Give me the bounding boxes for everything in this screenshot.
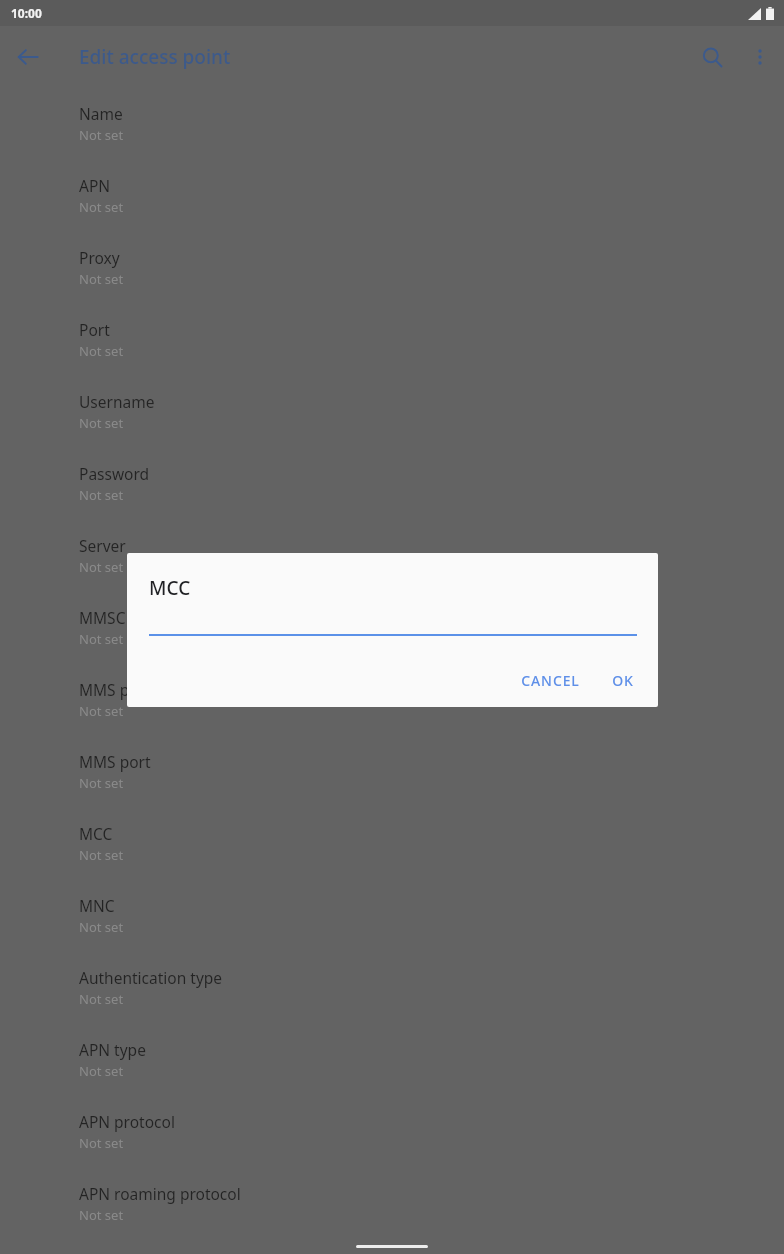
button[interactable]: Name bbox=[0, 103, 784, 175]
staticText: CANCEL bbox=[521, 671, 580, 690]
staticText: Not set bbox=[79, 342, 124, 360]
staticText: Not set bbox=[79, 846, 124, 864]
staticText: Port bbox=[79, 319, 110, 340]
button[interactable]: MMS proxy bbox=[0, 679, 784, 751]
staticText: Password bbox=[79, 463, 150, 484]
button[interactable]: CANCEL bbox=[509, 662, 592, 699]
staticText: Edit access point bbox=[79, 44, 231, 70]
button[interactable]: Back bbox=[6, 35, 50, 79]
button[interactable]: APN type bbox=[0, 1039, 784, 1111]
staticText: Proxy bbox=[79, 247, 120, 268]
staticText: APN roaming protocol bbox=[79, 1183, 241, 1204]
button[interactable]: Search bbox=[688, 33, 736, 81]
staticText: APN protocol bbox=[79, 1111, 175, 1132]
button[interactable]: Authentication type bbox=[0, 967, 784, 1039]
button[interactable]: More options bbox=[736, 33, 784, 81]
staticText: Server bbox=[79, 535, 126, 556]
staticText: Not set bbox=[79, 414, 124, 432]
staticText: Not set bbox=[79, 558, 124, 576]
staticText: Not set bbox=[79, 774, 124, 792]
staticText: APN type bbox=[79, 1039, 146, 1060]
staticText: 10:00 bbox=[11, 5, 42, 21]
staticText: Not set bbox=[79, 990, 124, 1008]
staticText: MCC bbox=[149, 575, 191, 601]
staticText: Not set bbox=[79, 198, 124, 216]
button[interactable]: MCC input field bbox=[149, 633, 637, 673]
staticText: Name bbox=[79, 103, 123, 124]
button[interactable]: APN roaming protocol bbox=[0, 1183, 784, 1254]
staticText: Not set bbox=[79, 1206, 124, 1224]
staticText: Authentication type bbox=[79, 967, 223, 988]
button[interactable]: OK bbox=[600, 662, 646, 699]
staticText: Not set bbox=[79, 486, 124, 504]
button[interactable]: Server bbox=[0, 535, 784, 607]
staticText: Not set bbox=[79, 126, 124, 144]
staticText: MMS port bbox=[79, 751, 151, 772]
staticText: Not set bbox=[79, 630, 124, 648]
staticText: OK bbox=[612, 671, 634, 690]
staticText: MNC bbox=[79, 895, 115, 916]
button[interactable]: APN protocol bbox=[0, 1111, 784, 1183]
staticText: MMSC bbox=[79, 607, 126, 628]
staticText: MMS proxy bbox=[79, 679, 161, 700]
staticText: Not set bbox=[79, 702, 124, 720]
staticText: Not set bbox=[79, 1134, 124, 1152]
staticText: MCC bbox=[79, 823, 113, 844]
button[interactable]: Password bbox=[0, 463, 784, 535]
staticText: Username bbox=[79, 391, 155, 412]
staticText: Not set bbox=[79, 270, 124, 288]
staticText: APN bbox=[79, 175, 111, 196]
button[interactable]: MMSC bbox=[0, 607, 784, 679]
button[interactable]: Username bbox=[0, 391, 784, 463]
staticText: Not set bbox=[79, 1062, 124, 1080]
staticText: Not set bbox=[79, 918, 124, 936]
button[interactable]: MMS port bbox=[0, 751, 784, 823]
